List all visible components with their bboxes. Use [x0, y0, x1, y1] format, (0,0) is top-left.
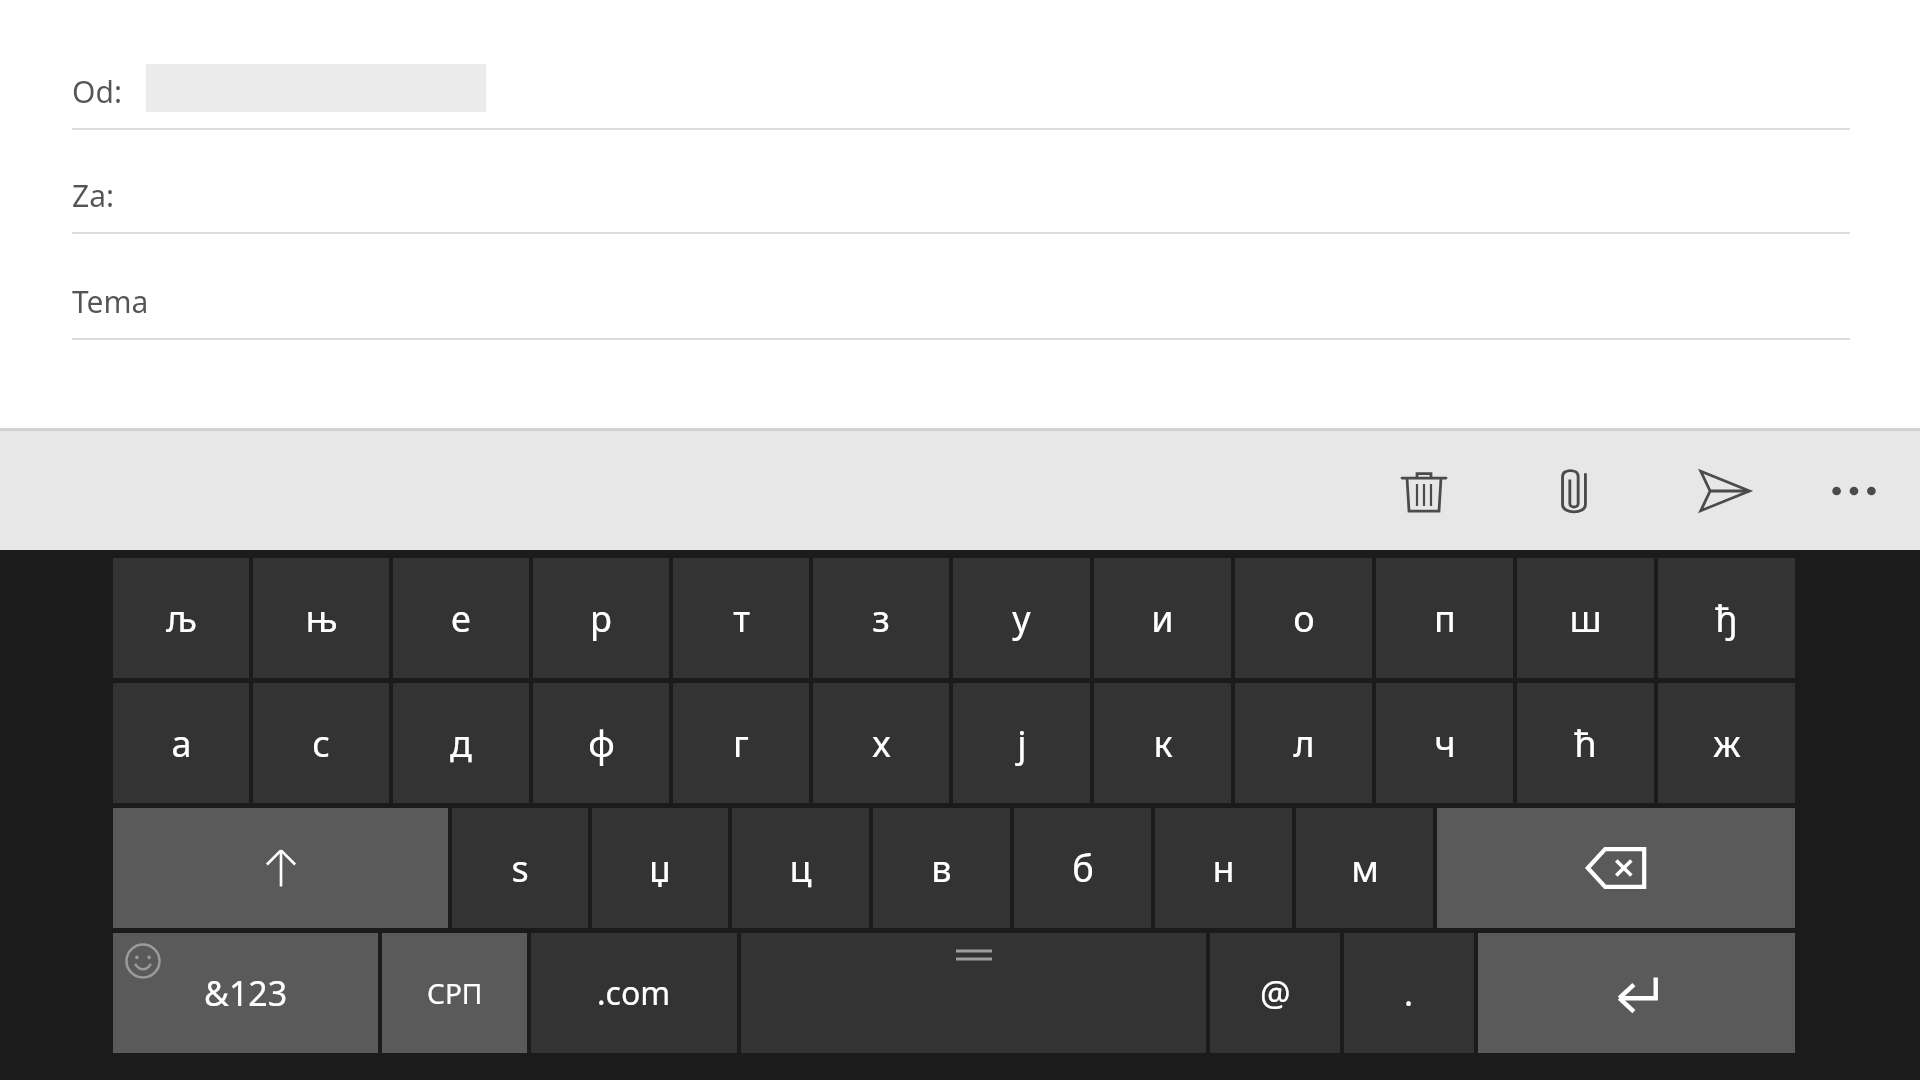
- button[interactable]: s: [452, 808, 588, 928]
- staticText: р: [590, 594, 612, 643]
- button[interactable]: .: [1344, 933, 1474, 1053]
- staticText: т: [733, 594, 750, 643]
- button[interactable]: л: [1235, 683, 1372, 803]
- staticText: о: [1293, 594, 1315, 643]
- button[interactable]: ж: [1658, 683, 1795, 803]
- staticText: н: [1212, 844, 1235, 893]
- button[interactable]: к: [1094, 683, 1231, 803]
- button[interactable]: т: [673, 558, 809, 678]
- staticText: а: [171, 719, 192, 768]
- staticText: љ: [166, 594, 197, 643]
- button[interactable]: у: [953, 558, 1090, 678]
- button[interactable]: з: [813, 558, 949, 678]
- button[interactable]: и: [1094, 558, 1231, 678]
- button[interactable]: &123: [113, 933, 378, 1053]
- staticText: @: [1260, 970, 1291, 1016]
- staticText: х: [872, 719, 891, 768]
- button[interactable]: о: [1235, 558, 1372, 678]
- button[interactable]: а: [113, 683, 249, 803]
- staticText: у: [1012, 594, 1031, 643]
- staticText: ж: [1713, 719, 1741, 768]
- button[interactable]: Enter: [1478, 933, 1795, 1053]
- staticText: в: [931, 844, 952, 893]
- button[interactable]: п: [1376, 558, 1513, 678]
- button[interactable]: м: [1296, 808, 1433, 928]
- button[interactable]: Space: [741, 933, 1206, 1053]
- button[interactable]: Za:: [0, 130, 1920, 234]
- staticText: к: [1153, 719, 1173, 768]
- button[interactable]: б: [1014, 808, 1151, 928]
- staticText: е: [451, 594, 471, 643]
- staticText: Tema: [72, 281, 149, 322]
- staticText: .com: [597, 971, 671, 1015]
- button[interactable]: СРП: [382, 933, 527, 1053]
- button[interactable]: љ: [113, 558, 249, 678]
- staticText: с: [312, 719, 330, 768]
- staticText: њ: [305, 594, 338, 643]
- staticText: м: [1351, 844, 1379, 893]
- button[interactable]: с: [253, 683, 389, 803]
- button[interactable]: Send: [1684, 436, 1764, 546]
- staticText: ћ: [1574, 719, 1597, 768]
- staticText: џ: [649, 844, 671, 893]
- staticText: s: [511, 844, 529, 893]
- button[interactable]: в: [873, 808, 1010, 928]
- staticText: г: [733, 719, 749, 768]
- staticText: п: [1434, 594, 1456, 643]
- staticText: и: [1151, 594, 1174, 643]
- button[interactable]: д: [393, 683, 529, 803]
- button[interactable]: ђ: [1658, 558, 1795, 678]
- staticText: б: [1072, 844, 1094, 893]
- button[interactable]: Delete: [1384, 436, 1464, 546]
- button[interactable]: Tema: [0, 234, 1920, 340]
- staticText: ш: [1569, 594, 1602, 643]
- button[interactable]: г: [673, 683, 809, 803]
- button[interactable]: њ: [253, 558, 389, 678]
- staticText: ч: [1434, 719, 1456, 768]
- staticText: ј: [1017, 719, 1027, 768]
- button[interactable]: ф: [533, 683, 669, 803]
- staticText: .: [1404, 970, 1414, 1016]
- staticText: ф: [588, 719, 615, 768]
- staticText: ц: [789, 844, 812, 893]
- button[interactable]: е: [393, 558, 529, 678]
- button[interactable]: ћ: [1517, 683, 1654, 803]
- staticText: з: [872, 594, 890, 643]
- staticText: Od:: [72, 71, 122, 112]
- button[interactable]: р: [533, 558, 669, 678]
- button[interactable]: Attach file: [1534, 436, 1614, 546]
- button[interactable]: х: [813, 683, 949, 803]
- button[interactable]: Od:: [0, 30, 1920, 130]
- button[interactable]: Shift: [113, 808, 448, 928]
- staticText: д: [450, 719, 472, 768]
- button[interactable]: ч: [1376, 683, 1513, 803]
- button[interactable]: More options: [1814, 436, 1894, 546]
- staticText: СРП: [427, 974, 483, 1012]
- button[interactable]: Backspace: [1437, 808, 1795, 928]
- button[interactable]: џ: [592, 808, 728, 928]
- button[interactable]: @: [1210, 933, 1340, 1053]
- button[interactable]: ш: [1517, 558, 1654, 678]
- button[interactable]: ц: [732, 808, 869, 928]
- staticText: ђ: [1715, 594, 1738, 643]
- button[interactable]: ј: [953, 683, 1090, 803]
- staticText: л: [1293, 719, 1315, 768]
- button[interactable]: н: [1155, 808, 1292, 928]
- staticText: &123: [204, 970, 288, 1016]
- button[interactable]: .com: [531, 933, 737, 1053]
- staticText: Za:: [72, 175, 115, 216]
